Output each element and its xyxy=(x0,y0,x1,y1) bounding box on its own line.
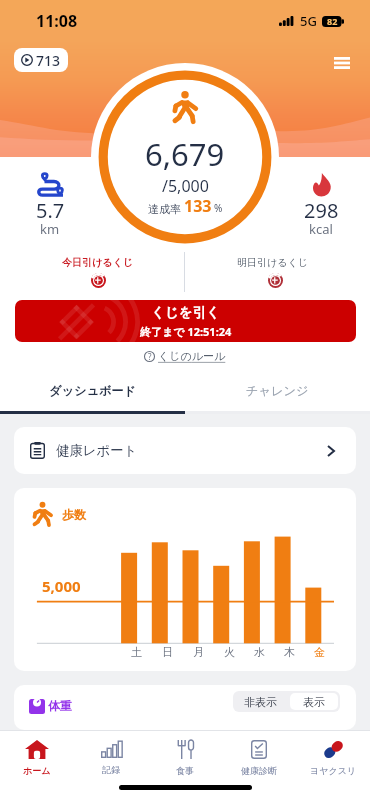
staticText: ヨヤクスリ xyxy=(310,765,357,776)
button[interactable]: 非表示 xyxy=(233,691,288,712)
staticText: 表示 xyxy=(303,695,325,709)
staticText: 713 xyxy=(36,51,61,70)
staticText: 食事 xyxy=(176,765,194,776)
button[interactable]: 歩数 xyxy=(14,488,356,671)
staticText: 健康診断 xyxy=(241,765,277,776)
staticText: 終了まで 12:51:24 xyxy=(140,324,232,339)
staticText: チャレンジ xyxy=(246,383,309,398)
button[interactable]: Menu xyxy=(325,46,359,80)
staticText: 木 xyxy=(284,645,295,659)
button[interactable]: 表示 xyxy=(290,693,338,710)
staticText: 月 xyxy=(193,645,204,659)
staticText: 11:08 xyxy=(36,10,78,32)
button[interactable]: 298 xyxy=(294,173,348,242)
button[interactable]: 健康診断 xyxy=(222,731,296,785)
staticText: 体重 xyxy=(48,698,72,713)
button[interactable]: 食事 xyxy=(148,731,222,785)
staticText: 火 xyxy=(224,645,235,659)
staticText: 6,679 xyxy=(145,133,225,175)
button[interactable]: ダッシュボード xyxy=(0,379,185,411)
staticText: 記録 xyxy=(102,764,120,775)
staticText: % xyxy=(214,201,223,215)
button[interactable]: ? xyxy=(0,349,370,363)
staticText: くじを引く xyxy=(151,304,220,321)
button[interactable]: 体重 xyxy=(14,685,356,730)
button[interactable]: 健康レポート xyxy=(14,427,356,474)
staticText: 達成率 xyxy=(148,202,181,216)
staticText: ダッシュボード xyxy=(49,383,137,398)
button[interactable]: くじを引く xyxy=(15,300,356,342)
button[interactable]: 記録 xyxy=(74,731,148,785)
staticText: 133 xyxy=(184,195,212,217)
staticText: くじのルール xyxy=(158,349,226,363)
staticText: 日 xyxy=(162,645,173,659)
button[interactable]: チャレンジ xyxy=(185,379,370,411)
staticText: 非表示 xyxy=(244,695,277,709)
staticText: 82 xyxy=(327,15,338,27)
button[interactable]: ホーム xyxy=(0,731,74,785)
staticText: 歩数 xyxy=(62,507,86,522)
staticText: 298 xyxy=(304,197,339,224)
button[interactable]: 今日引けるくじ xyxy=(0,252,184,292)
staticText: 今日引けるくじ xyxy=(62,256,133,269)
staticText: 5G xyxy=(300,12,317,30)
staticText: ? xyxy=(148,351,152,362)
button[interactable]: 5.7 xyxy=(23,173,77,242)
button[interactable]: ヨヤクスリ xyxy=(296,731,370,785)
staticText: 5.7 xyxy=(36,197,65,224)
staticText: kcal xyxy=(309,220,333,238)
staticText: 健康レポート xyxy=(56,442,138,459)
staticText: 金 xyxy=(314,645,325,659)
staticText: 5,000 xyxy=(42,576,81,596)
staticText: km xyxy=(40,220,60,238)
staticText: 土 xyxy=(131,645,142,659)
staticText: 水 xyxy=(254,645,265,659)
button[interactable]: 明日引けるくじ xyxy=(185,252,370,292)
staticText: /5,000 xyxy=(162,175,209,197)
button[interactable]: 713 xyxy=(14,48,68,72)
staticText: ホーム xyxy=(23,765,51,776)
staticText: 明日引けるくじ xyxy=(237,256,308,269)
